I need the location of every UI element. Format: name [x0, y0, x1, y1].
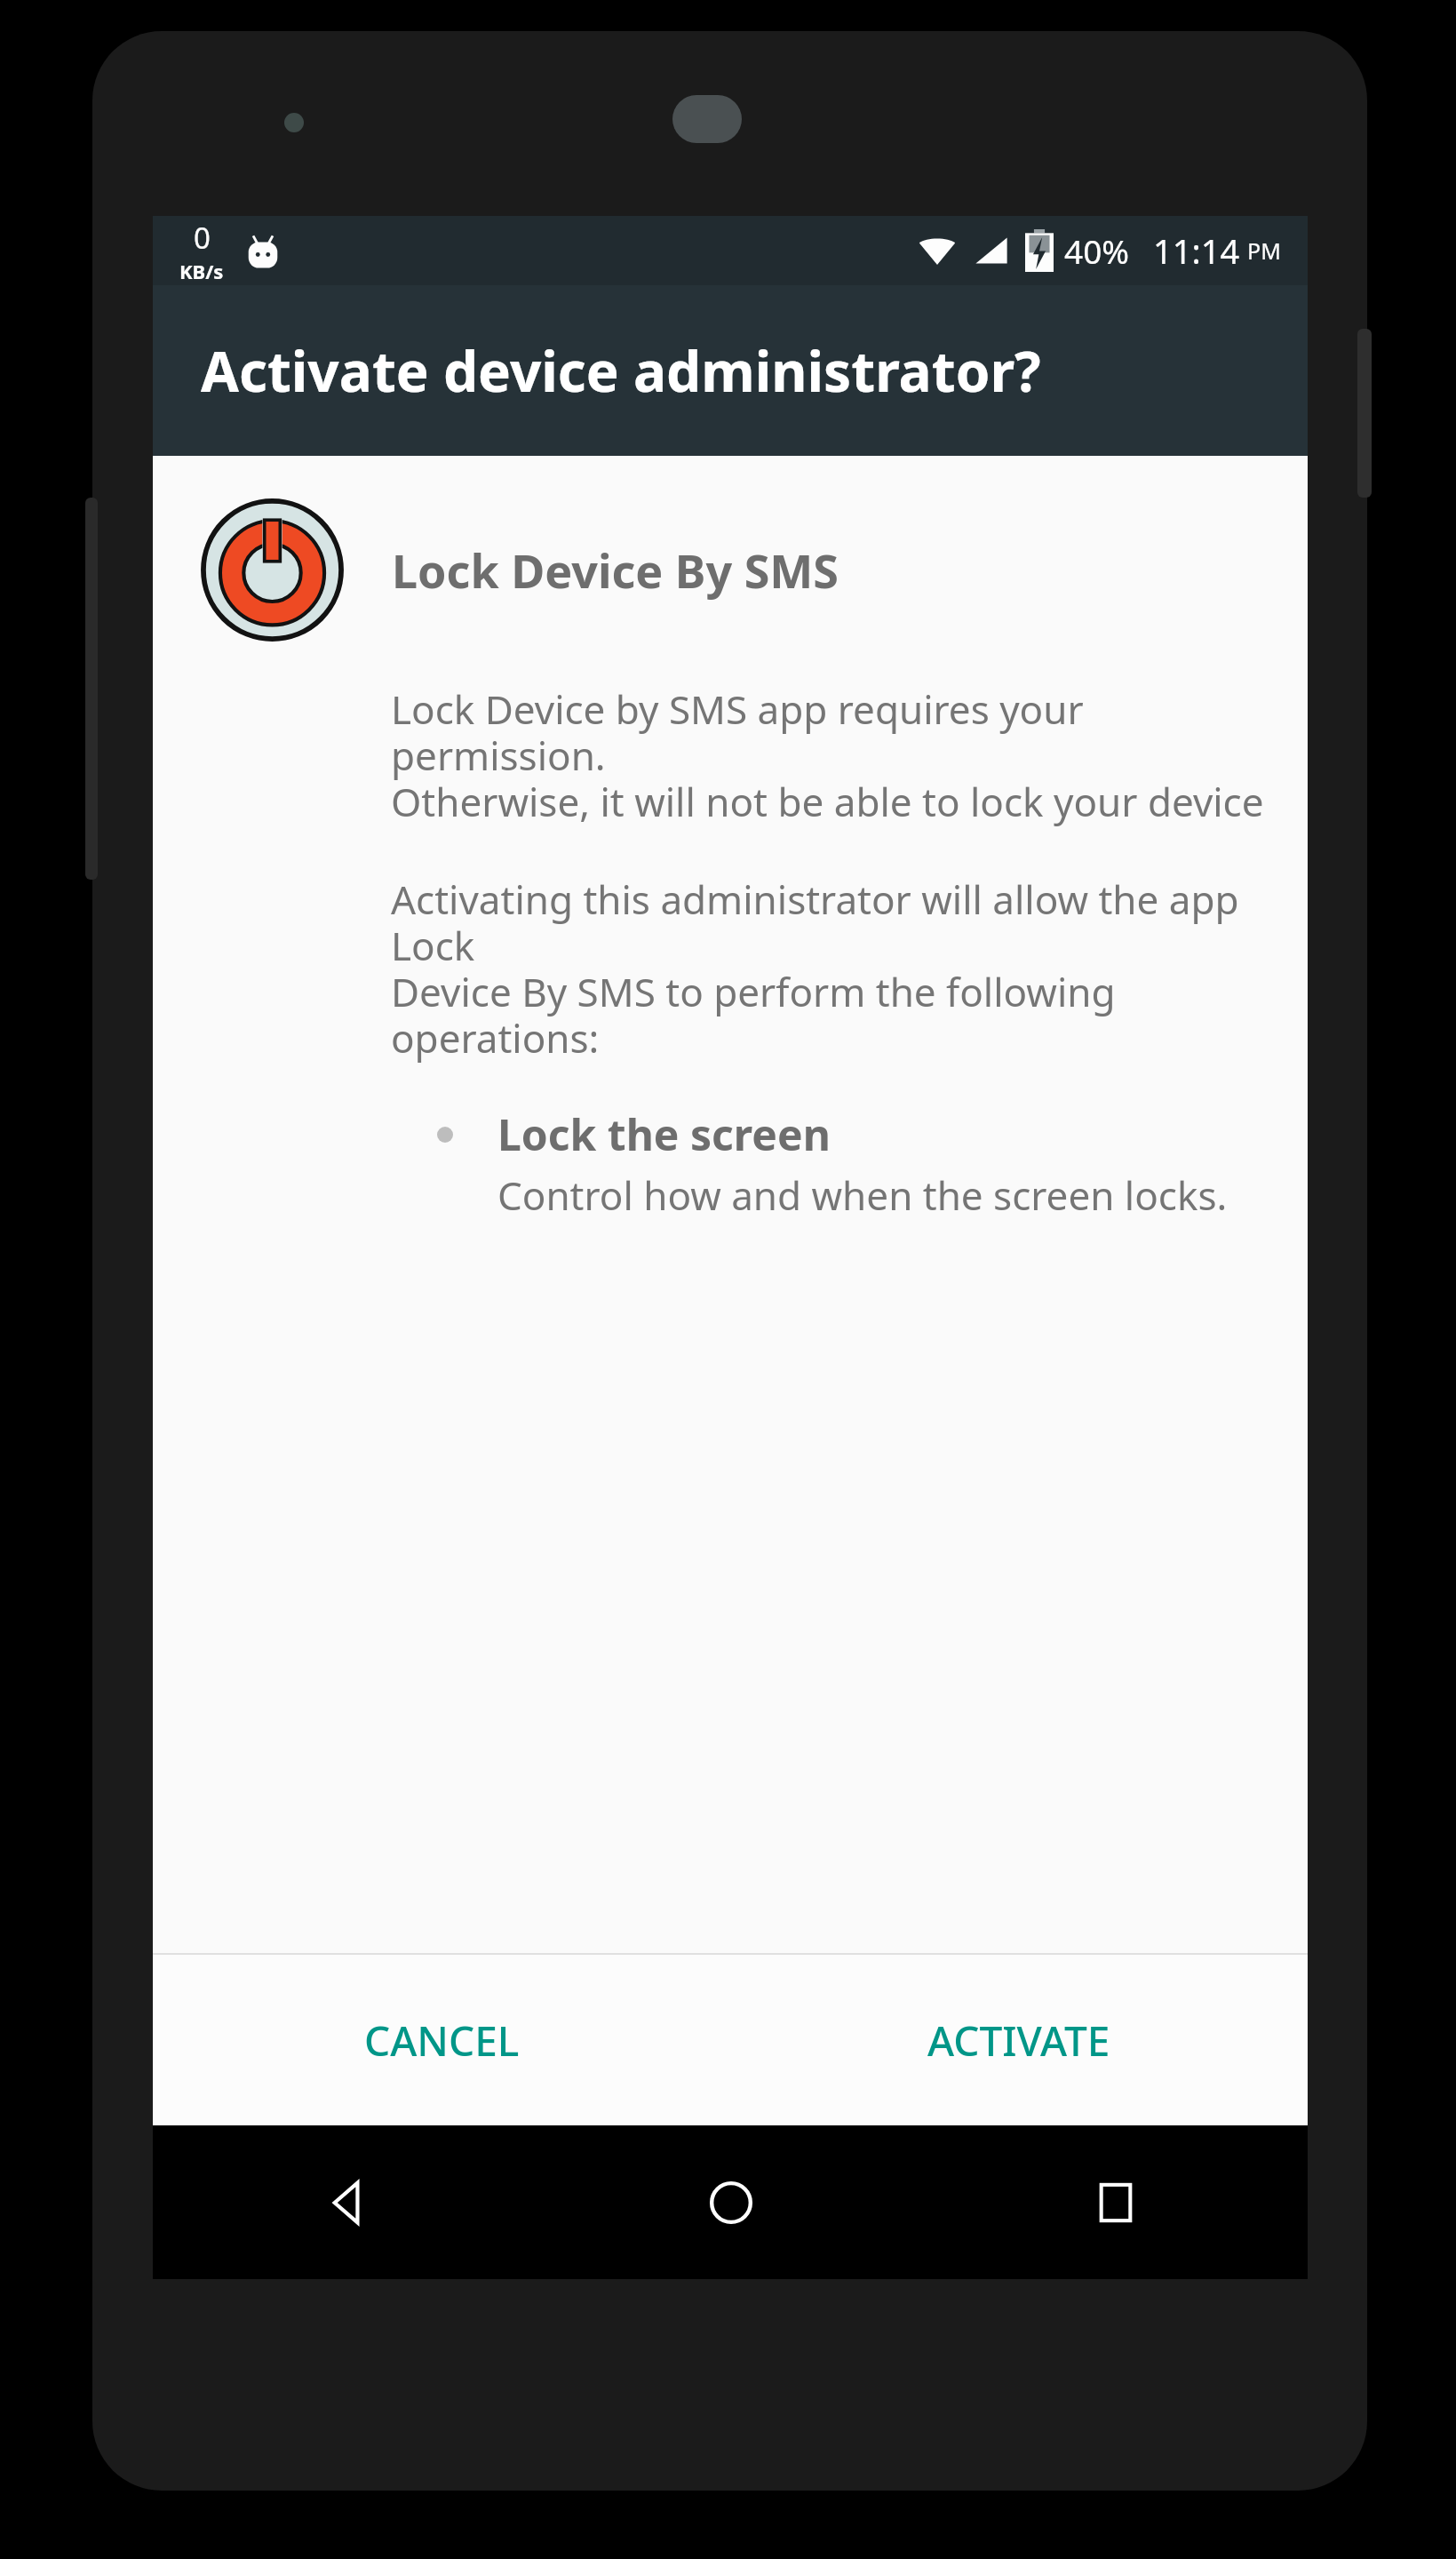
staticText: 0: [194, 218, 211, 258]
staticText: Lock Device by SMS app requires your per…: [391, 682, 1272, 828]
staticText: Activate device administrator?: [201, 333, 1041, 408]
staticText: 40%: [1064, 228, 1130, 273]
staticText: Lock Device By SMS: [392, 538, 839, 602]
button[interactable]: ACTIVATE: [895, 1991, 1142, 2090]
staticText: Lock the screen: [497, 1105, 831, 1163]
staticText: 11:14: [1153, 227, 1240, 274]
staticText: KB/s: [179, 258, 224, 284]
button[interactable]: Recent apps: [923, 2125, 1308, 2279]
staticText: CANCEL: [364, 2013, 520, 2069]
staticText: PM: [1247, 235, 1281, 266]
staticText: Control how and when the screen locks.: [497, 1168, 1228, 1222]
button[interactable]: Back: [153, 2125, 538, 2279]
button[interactable]: CANCEL: [332, 1991, 552, 2090]
button[interactable]: Home: [538, 2125, 923, 2279]
staticText: Activating this administrator will allow…: [391, 873, 1272, 1064]
staticText: ACTIVATE: [927, 2013, 1110, 2069]
